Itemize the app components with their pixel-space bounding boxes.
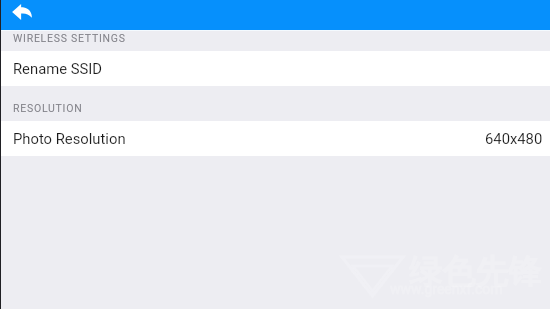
button[interactable]: Back xyxy=(0,0,44,30)
staticText: 640x480 xyxy=(485,130,543,147)
button[interactable]: Photo Resolution xyxy=(0,121,550,156)
staticText: WIRELESS SETTINGS xyxy=(13,32,126,44)
staticText: RESOLUTION xyxy=(13,102,83,114)
staticText: Photo Resolution xyxy=(13,130,126,147)
button[interactable]: Rename SSID xyxy=(0,51,550,86)
staticText: Rename SSID xyxy=(13,60,102,77)
